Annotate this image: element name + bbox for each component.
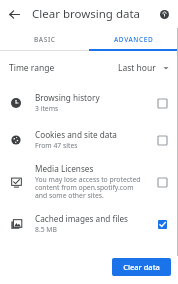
staticText: From 47 sites — [35, 141, 78, 150]
button[interactable]: Checked — [154, 216, 170, 232]
staticText: Cookies and site data — [35, 129, 117, 140]
staticText: 8.5 MB — [35, 225, 57, 234]
button[interactable]: Unchecked — [154, 174, 170, 190]
button[interactable]: Media Licenses — [0, 158, 178, 205]
button[interactable]: Back — [0, 0, 28, 28]
button[interactable]: Unchecked — [154, 95, 170, 111]
staticText: Browsing history — [35, 92, 100, 103]
button[interactable]: Unchecked — [154, 132, 170, 148]
button[interactable]: Time range — [0, 51, 178, 84]
staticText: Clear browsing data — [32, 6, 141, 22]
staticText: Clear data — [123, 262, 160, 272]
button[interactable]: Cookies and site data — [0, 121, 178, 158]
button[interactable]: BASIC — [0, 28, 89, 51]
button[interactable]: Clear data — [112, 258, 171, 276]
staticText: Cached images and files — [35, 213, 129, 224]
staticText: ADVANCED — [114, 35, 154, 44]
button[interactable]: Cached images and files — [0, 205, 178, 242]
button[interactable]: Browsing history — [0, 84, 178, 121]
staticText: Media Licenses — [35, 163, 94, 174]
staticText: Last hour — [118, 62, 156, 74]
staticText: Time range — [9, 62, 55, 74]
staticText: You may lose access to protected content… — [35, 175, 146, 200]
staticText: 3 items — [35, 104, 59, 113]
button[interactable]: ADVANCED — [89, 28, 178, 51]
staticText: BASIC — [34, 35, 56, 44]
button[interactable]: Help — [150, 0, 178, 28]
